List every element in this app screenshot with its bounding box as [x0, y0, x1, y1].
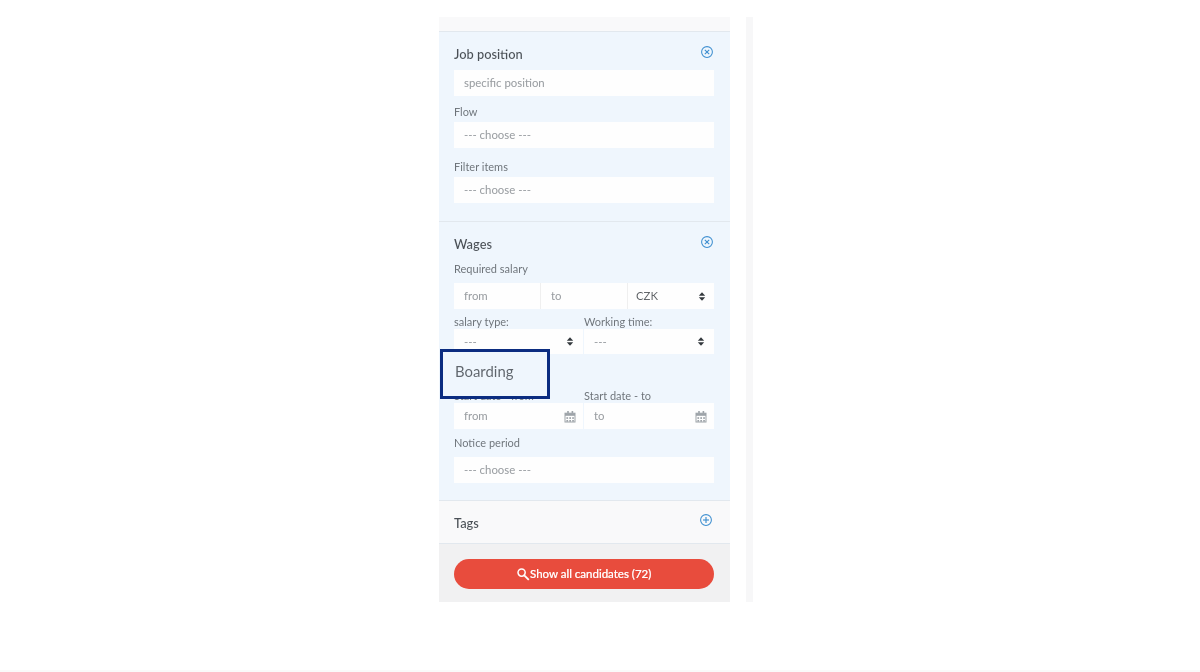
- button[interactable]: Remove section: [697, 42, 717, 62]
- staticText: --- choose ---: [464, 128, 531, 142]
- staticText: specific position: [464, 76, 545, 90]
- button[interactable]: specific position: [454, 70, 714, 96]
- staticText: Show all candidates (72): [530, 567, 652, 581]
- button[interactable]: --- choose ---: [454, 177, 714, 203]
- staticText: ---: [464, 335, 477, 349]
- staticText: --- choose ---: [464, 463, 531, 477]
- button[interactable]: ---: [584, 329, 714, 354]
- button[interactable]: Show all candidates (72): [454, 559, 714, 589]
- staticText: CZK: [636, 289, 659, 303]
- button[interactable]: to: [541, 283, 627, 309]
- staticText: Working time:: [584, 315, 653, 328]
- staticText: from: [464, 289, 488, 303]
- staticText: from: [464, 409, 488, 423]
- staticText: Tags: [454, 515, 479, 530]
- button[interactable]: Add tag: [696, 510, 716, 530]
- staticText: Start date - from: [454, 389, 534, 402]
- staticText: salary type:: [454, 315, 509, 328]
- staticText: --- choose ---: [464, 183, 531, 197]
- staticText: Flow: [454, 105, 478, 118]
- staticText: Start date - to: [584, 389, 652, 402]
- button[interactable]: from: [454, 403, 583, 429]
- button[interactable]: Remove section: [697, 232, 717, 252]
- staticText: ---: [594, 335, 607, 349]
- staticText: Wages: [454, 236, 493, 251]
- staticText: Notice period: [454, 436, 520, 449]
- staticText: to: [551, 289, 562, 303]
- button[interactable]: --- choose ---: [454, 457, 714, 483]
- button[interactable]: from: [454, 283, 540, 309]
- button[interactable]: ---: [454, 329, 583, 354]
- staticText: Required salary: [454, 262, 528, 275]
- button[interactable]: to: [584, 403, 714, 429]
- button[interactable]: --- choose ---: [454, 122, 714, 148]
- staticText: Filter items: [454, 160, 508, 173]
- staticText: Boarding: [455, 362, 514, 380]
- button[interactable]: CZK: [628, 283, 714, 309]
- staticText: to: [594, 409, 605, 423]
- staticText: Job position: [454, 46, 523, 61]
